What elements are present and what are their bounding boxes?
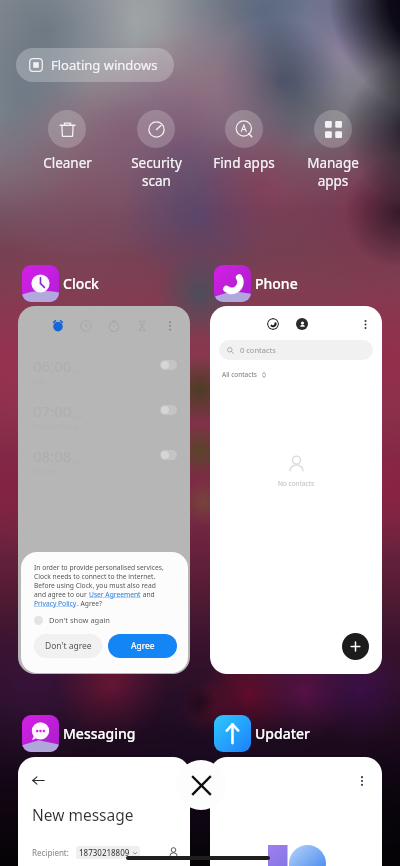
staticText: Recipient: <box>32 847 69 858</box>
staticText: Find apps <box>213 154 275 172</box>
button[interactable]: Floating windows <box>16 48 174 82</box>
staticText: Clock needs to connect to the internet. <box>34 572 156 581</box>
button[interactable]: Back <box>32 774 45 787</box>
button[interactable]: Security scan <box>117 110 195 190</box>
button[interactable]: Add contact <box>342 633 369 660</box>
button[interactable]: Close all <box>176 760 226 810</box>
staticText: Cleaner <box>43 154 92 172</box>
button[interactable]: Choose contact <box>168 847 179 858</box>
button[interactable]: Don't show again <box>34 615 110 625</box>
button[interactable]: 0 contacts <box>219 340 373 360</box>
button[interactable]: Messaging <box>22 715 136 752</box>
button[interactable]: Contacts <box>296 318 308 330</box>
button[interactable]: Cleaner <box>28 110 106 172</box>
staticText: Security scan <box>131 154 182 190</box>
staticText: Messaging <box>63 724 136 743</box>
staticText: Before using Clock, you must also read <box>34 581 156 590</box>
staticText: Don't agree <box>45 640 92 652</box>
staticText: Agree <box>131 640 155 652</box>
button[interactable]: Dialer <box>267 318 279 330</box>
button[interactable] <box>210 757 382 866</box>
staticText: 18730218809 <box>79 847 130 858</box>
button[interactable]: Clock <box>22 265 99 302</box>
staticText: 0 contacts <box>240 345 276 355</box>
staticText: Don't show again <box>49 615 110 625</box>
button[interactable] <box>160 450 177 460</box>
button[interactable]: Back <box>18 757 190 866</box>
staticText: New message <box>32 804 134 825</box>
staticText: Manage apps <box>307 154 359 190</box>
button[interactable]: Find apps <box>205 110 283 172</box>
staticText: In order to provide personalised service… <box>34 563 164 572</box>
staticText: and <box>141 590 155 599</box>
button[interactable]: Phone <box>214 265 298 302</box>
button[interactable]: 06:00 <box>18 306 190 674</box>
staticText: No contacts <box>278 479 315 488</box>
staticText: Phone <box>255 274 298 293</box>
button[interactable]: Manage apps <box>294 110 372 190</box>
staticText: User Agreement <box>89 590 141 599</box>
button[interactable]: All contacts <box>222 370 267 379</box>
button[interactable]: Dialer <box>210 306 382 674</box>
button[interactable] <box>160 360 177 370</box>
button[interactable]: Updater <box>214 715 311 752</box>
button[interactable]: More options <box>360 319 371 330</box>
button[interactable]: 18730218809 <box>76 846 140 859</box>
staticText: . Agree? <box>77 599 102 608</box>
button[interactable] <box>160 405 177 415</box>
staticText: Updater <box>255 724 311 743</box>
staticText: and agree to our <box>34 590 89 599</box>
staticText: Clock <box>63 274 99 293</box>
staticText: Privacy Policy <box>34 599 77 608</box>
button[interactable]: Don't agree <box>34 634 102 658</box>
staticText: All contacts <box>222 370 257 379</box>
button[interactable]: Agree <box>108 634 177 658</box>
staticText: Floating windows <box>51 56 158 74</box>
